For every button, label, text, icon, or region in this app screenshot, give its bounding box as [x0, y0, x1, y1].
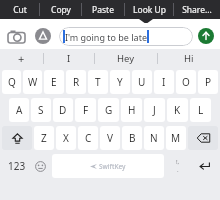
button[interactable]: App Store [32, 25, 54, 47]
staticText: . [177, 166, 179, 174]
staticText: A [16, 103, 23, 117]
button[interactable]: Hey [95, 49, 157, 67]
button[interactable]: Return [190, 154, 217, 178]
staticText: D [59, 103, 67, 117]
button[interactable]: SwiftKey [52, 154, 164, 178]
button[interactable]: U [132, 70, 152, 94]
button[interactable]: H [121, 98, 142, 122]
button[interactable]: T [88, 70, 108, 94]
staticText: Paste [92, 4, 114, 16]
staticText: P [205, 75, 212, 89]
staticText: !, [176, 158, 180, 166]
button[interactable]: K [167, 98, 188, 122]
button[interactable]: P [198, 70, 218, 94]
button[interactable]: Copy [40, 0, 81, 19]
button[interactable]: M [166, 126, 186, 150]
button[interactable]: B [122, 126, 142, 150]
staticText: Q [8, 75, 16, 89]
staticText: W [28, 75, 38, 89]
button[interactable]: Send [197, 27, 215, 45]
staticText: I [67, 52, 71, 65]
button[interactable]: E [44, 70, 64, 94]
staticText: Look Up [133, 4, 166, 16]
staticText: N [150, 131, 158, 145]
button[interactable]: I'm going to be late [59, 27, 193, 46]
staticText: S [38, 103, 44, 117]
button[interactable]: A [9, 98, 29, 122]
button[interactable]: Paste [82, 0, 124, 19]
button[interactable]: Z [34, 126, 54, 150]
staticText: K [174, 103, 181, 117]
staticText: Hi [184, 52, 194, 65]
button[interactable]: Share... [174, 0, 220, 19]
button[interactable]: R [66, 70, 86, 94]
staticText: B [129, 131, 136, 145]
staticText: T [95, 75, 101, 89]
button[interactable]: G [98, 98, 119, 122]
staticText: J [153, 103, 156, 117]
button[interactable]: L [190, 98, 211, 122]
button[interactable]: X [56, 126, 76, 150]
button[interactable]: Q [2, 70, 21, 94]
staticText: Hey [117, 52, 135, 65]
staticText: L [198, 103, 204, 117]
staticText: Share... [182, 4, 212, 16]
button[interactable]: N [144, 126, 164, 150]
button[interactable]: Y [110, 70, 130, 94]
staticText: Z [41, 131, 47, 145]
button[interactable]: Cut [0, 0, 39, 19]
button[interactable]: 123 [3, 154, 30, 178]
staticText: E [51, 75, 57, 89]
staticText: Y [117, 75, 123, 89]
staticText: R [73, 75, 80, 89]
button[interactable]: I [44, 49, 94, 67]
button[interactable]: C [78, 126, 98, 150]
staticText: + [18, 51, 25, 66]
button[interactable]: W [23, 70, 42, 94]
staticText: V [107, 131, 113, 145]
button[interactable]: O [176, 70, 196, 94]
staticText: Cut [13, 4, 27, 16]
button[interactable]: Look Up [125, 0, 173, 19]
button[interactable]: Add word [0, 49, 43, 67]
button[interactable]: Hi [158, 49, 220, 67]
button[interactable]: !, [166, 154, 190, 178]
button[interactable]: Camera [5, 25, 27, 47]
staticText: U [138, 75, 146, 89]
staticText: F [83, 103, 89, 117]
button[interactable]: Shift [2, 126, 32, 150]
staticText: G [105, 103, 113, 117]
staticText: X [63, 131, 69, 145]
staticText: C [85, 131, 92, 145]
button[interactable]: D [53, 98, 73, 122]
button[interactable]: I [154, 70, 174, 94]
button[interactable]: Backspace [188, 126, 218, 150]
button[interactable]: Emoji [30, 154, 50, 178]
button[interactable]: J [144, 98, 165, 122]
staticText: I [162, 75, 166, 89]
staticText: 123 [8, 159, 26, 173]
staticText: O [182, 75, 190, 89]
button[interactable]: V [100, 126, 120, 150]
staticText: H [128, 103, 136, 117]
button[interactable]: S [31, 98, 51, 122]
staticText: Copy [51, 4, 71, 16]
staticText: M [171, 131, 181, 145]
button[interactable]: F [75, 98, 96, 122]
staticText: I'm going to be late [65, 31, 147, 43]
staticText: SwiftKey [99, 162, 126, 171]
